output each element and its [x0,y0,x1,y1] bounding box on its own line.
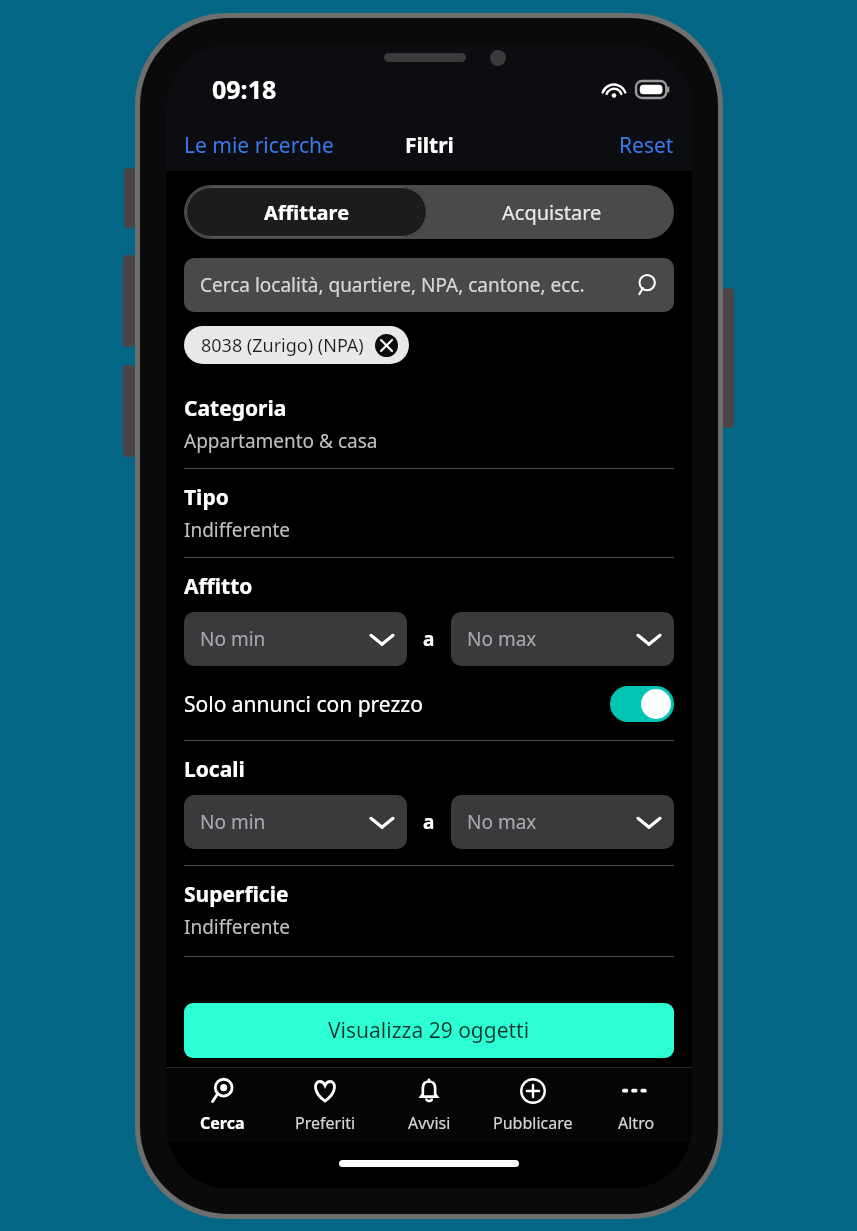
button[interactable]: Le mie ricerche [174,125,344,166]
staticText: Cerca località, quartiere, NPA, cantone,… [200,272,634,298]
button[interactable]: Cerca [174,1071,270,1139]
staticText: Superficie [184,880,289,909]
staticText: Visualizza 29 oggetti [328,1016,530,1045]
staticText: Indifferente [184,517,291,543]
button[interactable]: Reset [609,125,684,166]
button[interactable]: Categoria [184,380,674,468]
staticText: Filtri [405,131,454,160]
staticText: Locali [184,755,245,784]
button[interactable]: No max [451,795,674,849]
staticText: No min [200,626,371,652]
staticText: Tipo [184,483,229,512]
staticText: Indifferente [184,914,291,940]
staticText: Le mie ricerche [184,131,334,160]
staticText: Altro [618,1112,655,1134]
staticText: No max [467,809,638,835]
staticText: Reset [619,131,674,160]
button[interactable]: Cerca località, quartiere, NPA, cantone,… [184,258,674,312]
staticText: Solo annunci con prezzo [184,690,610,719]
button[interactable]: Pubblicare [485,1071,581,1139]
staticText: Affittare [264,199,350,226]
button[interactable]: Acquistare [429,185,674,239]
button[interactable]: Avvisi [381,1071,477,1139]
button[interactable]: Tipo [184,469,674,557]
button[interactable]: Altro [588,1071,684,1139]
staticText: Acquistare [502,199,602,226]
button[interactable]: 8038 (Zurigo) (NPA) [184,326,409,364]
staticText: Affitto [184,572,253,601]
staticText: Categoria [184,394,287,423]
button[interactable]: Superficie [184,880,674,940]
button[interactable]: No max [451,612,674,666]
button[interactable]: Affittare [186,187,427,237]
button[interactable]: No min [184,795,407,849]
staticText: a [423,626,435,652]
staticText: Avvisi [408,1112,451,1134]
button[interactable]: Preferiti [277,1071,373,1139]
staticText: 8038 (Zurigo) (NPA) [201,333,364,358]
button[interactable]: Visualizza 29 oggetti [184,1003,674,1058]
staticText: Preferiti [295,1112,356,1134]
button[interactable]: No min [184,612,407,666]
staticText: No min [200,809,371,835]
staticText: a [423,809,435,835]
staticText: Appartamento & casa [184,428,378,454]
button[interactable]: Solo annunci con prezzo [184,680,674,728]
other: Rimuovi 8038 (Zurigo) [375,334,398,357]
staticText: No max [467,626,638,652]
staticText: Pubblicare [493,1112,573,1134]
staticText: Cerca [200,1112,245,1134]
staticText: 09:18 [212,72,277,106]
